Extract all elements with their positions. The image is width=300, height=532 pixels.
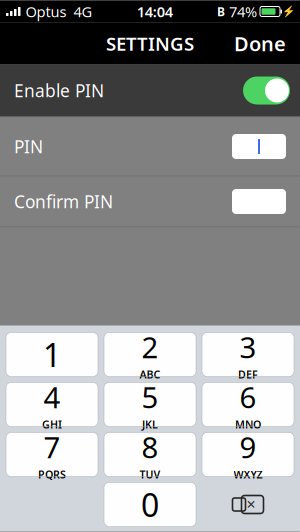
button[interactable]: 1 [6, 332, 98, 376]
button[interactable]: 7 [6, 432, 98, 476]
staticText: Confirm PIN [14, 190, 113, 213]
staticText: DEF [238, 367, 258, 382]
staticText: ABC [139, 367, 160, 382]
staticText: PIN [14, 135, 43, 158]
button[interactable]: 4 [6, 382, 98, 426]
staticText: 8 [141, 427, 158, 466]
staticText: 2 [141, 327, 158, 366]
staticText: 1 [43, 333, 61, 376]
button[interactable]: Enable PIN [0, 64, 300, 116]
button[interactable]: 5 [104, 382, 196, 426]
staticText: 5 [141, 377, 158, 416]
staticText: SETTINGS [106, 31, 194, 56]
staticText: GHI [42, 417, 62, 432]
button[interactable]: 8 [104, 432, 196, 476]
button[interactable]: Delete [202, 482, 294, 526]
button[interactable]: 2 [104, 332, 196, 376]
button[interactable]: Done [224, 24, 296, 63]
button[interactable]: PIN [0, 117, 300, 175]
staticText: 4 [43, 377, 60, 416]
staticText: Optus [25, 2, 66, 21]
staticText: B [217, 3, 225, 19]
staticText: MNO [235, 417, 261, 432]
staticText: JKL [142, 417, 158, 432]
button[interactable]: 9 [202, 432, 294, 476]
staticText: 9 [239, 427, 256, 466]
staticText: 0 [141, 483, 159, 526]
button[interactable]: Confirm PIN [0, 176, 300, 226]
staticText: 74% [229, 2, 257, 21]
staticText: Enable PIN [14, 79, 104, 102]
staticText: 7 [43, 427, 60, 466]
staticText: 6 [239, 377, 256, 416]
staticText: 3 [239, 327, 256, 366]
staticText: Done [234, 30, 286, 57]
button[interactable]: 6 [202, 382, 294, 426]
staticText: ⚡ [282, 5, 295, 18]
staticText: WXYZ [233, 467, 262, 482]
button[interactable]: 3 [202, 332, 294, 376]
staticText: ✕ [246, 498, 256, 511]
staticText: 4G [73, 2, 92, 21]
staticText: 14:04 [137, 2, 173, 21]
button[interactable]: 0 [104, 482, 196, 526]
staticText: TUV [139, 467, 160, 482]
staticText: PQRS [38, 467, 66, 482]
